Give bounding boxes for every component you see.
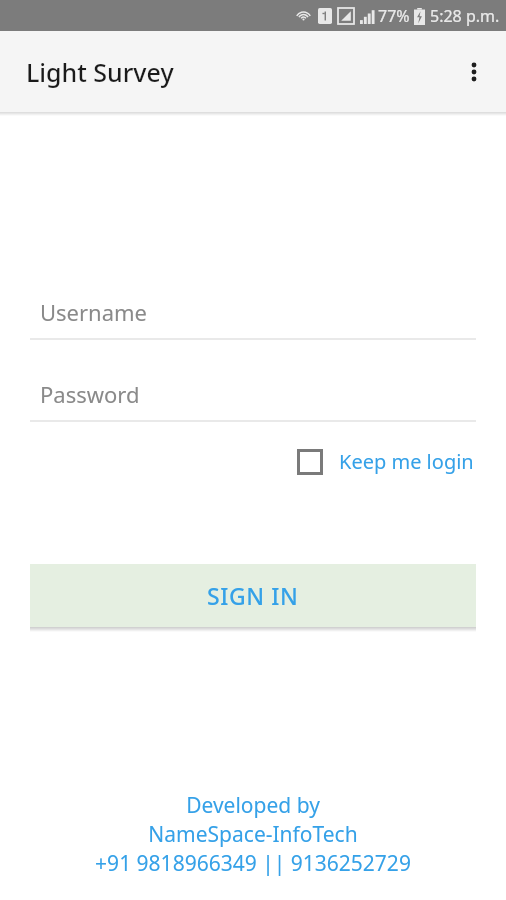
- staticText: +91 9818966349 || 9136252729: [0, 849, 506, 878]
- button[interactable]: SIGN IN: [30, 564, 476, 627]
- staticText: Light Survey: [26, 55, 174, 89]
- staticText: Developed by: [0, 791, 506, 820]
- button[interactable]: Password: [30, 368, 476, 422]
- button[interactable]: Keep me login: [295, 444, 476, 479]
- staticText: 77%: [378, 5, 410, 27]
- button[interactable]: More options: [450, 48, 498, 96]
- button[interactable]: Username: [30, 286, 476, 340]
- staticText: Keep me login: [339, 448, 474, 475]
- staticText: 5:28 p.m.: [430, 5, 500, 27]
- staticText: SIGN IN: [207, 580, 299, 611]
- staticText: NameSpace-InfoTech: [0, 820, 506, 849]
- staticText: Password: [40, 379, 140, 409]
- staticText: Username: [40, 297, 148, 327]
